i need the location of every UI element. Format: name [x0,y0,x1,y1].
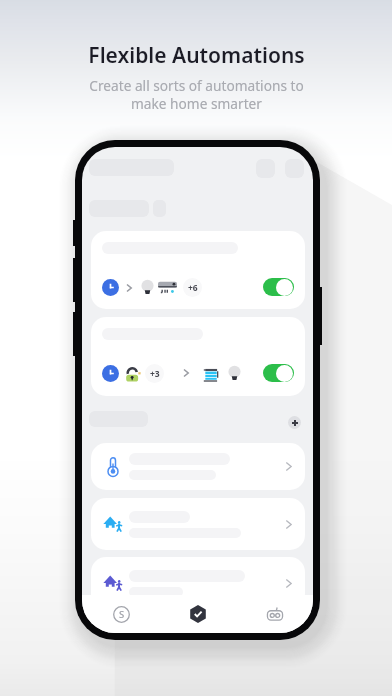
staticText: +6 [188,282,198,294]
button[interactable]: +6 [91,231,305,309]
staticText: +3 [150,368,160,380]
button[interactable]: Automations [181,597,215,631]
staticText: Flexible Automations [88,41,305,70]
button[interactable] [91,498,305,550]
button[interactable]: Assistant [258,597,292,631]
button[interactable] [91,557,305,609]
button[interactable]: +3 [91,317,305,396]
button[interactable]: Scenes [104,597,138,631]
staticText: S [119,608,125,621]
staticText: Create all sorts of automations to make … [89,76,304,113]
button[interactable]: Toggle automation [263,364,294,382]
button[interactable]: Toggle automation [263,278,294,296]
button[interactable]: Add automation [288,416,301,429]
button[interactable] [91,443,305,490]
